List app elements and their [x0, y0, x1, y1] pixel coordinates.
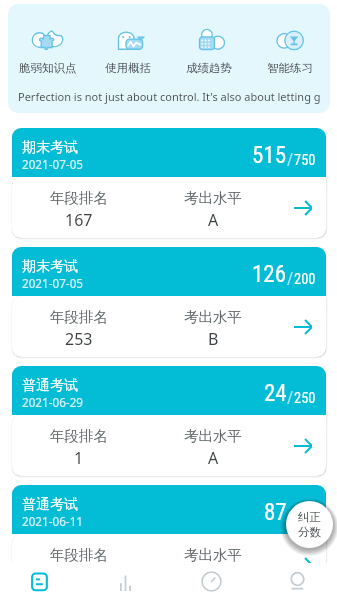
button[interactable]: History — [189, 563, 234, 600]
staticText: 年段排名 — [50, 546, 108, 564]
button[interactable]: 期末考试 — [12, 247, 326, 357]
staticText: / — [287, 387, 294, 407]
staticText: 87 — [264, 499, 287, 526]
staticText: / — [287, 506, 294, 526]
staticText: 普通考试 — [22, 496, 78, 514]
staticText: 100 — [294, 509, 316, 526]
staticText: 2021-06-29 — [22, 394, 84, 410]
staticText: 年段排名 — [50, 189, 108, 207]
staticText: 考出水平 — [184, 189, 242, 207]
staticText: 考出水平 — [184, 427, 242, 445]
staticText: 考出水平 — [184, 546, 242, 564]
staticText: 167 — [65, 209, 93, 231]
button[interactable]: 成绩趋势 — [168, 29, 249, 75]
button[interactable]: 智能练习 — [249, 29, 330, 75]
staticText: 1 — [74, 447, 84, 469]
staticText: A — [208, 566, 219, 588]
button[interactable]: 纠正 — [286, 501, 333, 548]
staticText: 期末考试 — [22, 139, 78, 157]
staticText: 普通考试 — [22, 377, 78, 395]
staticText: / — [287, 149, 294, 169]
button[interactable]: 使用概括 — [88, 29, 168, 75]
staticText: 期末考试 — [22, 258, 78, 276]
staticText: 使用概括 — [105, 61, 151, 75]
staticText: 2021-07-05 — [22, 156, 84, 172]
staticText: 2021-06-11 — [22, 513, 84, 529]
button[interactable]: 脆弱知识点 — [8, 29, 88, 75]
staticText: 750 — [294, 152, 316, 169]
button[interactable]: Profile — [275, 563, 320, 600]
staticText: A — [208, 209, 219, 231]
staticText: 智能练习 — [267, 61, 313, 75]
staticText: Perfection is not just about control. It… — [18, 89, 321, 104]
button[interactable]: 期末考试 — [12, 128, 326, 238]
staticText: 分数 — [298, 525, 321, 539]
staticText: 515 — [252, 142, 287, 169]
staticText: 年段排名 — [50, 308, 108, 326]
staticText: 考出水平 — [184, 308, 242, 326]
staticText: 24 — [264, 380, 287, 407]
staticText: / — [287, 268, 294, 288]
staticText: 年段排名 — [50, 427, 108, 445]
staticText: 2021-07-05 — [22, 275, 84, 291]
button[interactable]: 普通考试 — [12, 366, 326, 476]
staticText: 脆弱知识点 — [19, 61, 77, 75]
staticText: 250 — [294, 390, 316, 407]
staticText: B — [208, 328, 219, 350]
button[interactable]: 普通考试 — [12, 485, 326, 595]
button[interactable]: Statistics — [103, 563, 148, 600]
staticText: 253 — [65, 328, 93, 350]
staticText: 200 — [294, 271, 316, 288]
staticText: A — [208, 447, 219, 469]
staticText: 126 — [252, 261, 287, 288]
staticText: 纠正 — [298, 510, 321, 524]
staticText: 成绩趋势 — [186, 61, 232, 75]
button[interactable]: Reports — [17, 563, 62, 600]
